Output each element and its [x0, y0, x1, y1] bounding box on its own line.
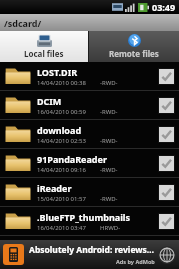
button[interactable]: Open ad in browser	[158, 246, 176, 264]
staticText: .BlueFTP_thumbnails	[37, 211, 131, 223]
button[interactable]: Select 91PandaReader	[159, 156, 174, 171]
button[interactable]: DCIM	[0, 91, 179, 120]
button[interactable]: Select DCIM	[159, 98, 174, 113]
staticText: iReader	[37, 182, 72, 194]
button[interactable]: Absolutely Android: reviews & guide	[0, 240, 179, 269]
button[interactable]: download	[0, 120, 179, 149]
staticText: 15/04/2010 01:57	[37, 195, 86, 203]
staticText: 91PandaReader	[37, 153, 107, 165]
staticText: -RWD-	[100, 166, 118, 174]
button[interactable]: Select iReader	[159, 185, 174, 200]
staticText: download	[37, 124, 82, 136]
button[interactable]: Select .BlueFTP_thumbnails	[159, 214, 174, 229]
button[interactable]: Select LOST.DIR	[159, 69, 174, 84]
staticText: DCIM	[37, 95, 62, 107]
button[interactable]: 91PandaReader	[0, 149, 179, 178]
staticText: Local files	[24, 48, 64, 59]
staticText: /sdcard/	[4, 17, 42, 29]
button[interactable]: Local files	[0, 31, 88, 62]
staticText: -RWD-	[100, 79, 118, 87]
staticText: 16/04/2010 03:47	[37, 224, 86, 232]
staticText: Remote files	[109, 48, 159, 59]
staticText: 14/04/2010 09:16	[37, 166, 86, 174]
button[interactable]: .BlueFTP_thumbnails	[0, 207, 179, 236]
staticText: 14/04/2010 00:38	[37, 79, 86, 87]
staticText: -RWD-	[100, 137, 118, 145]
staticText: 03:49	[152, 1, 176, 13]
staticText: -RWD-	[100, 195, 118, 203]
staticText: 14/04/2010 02:53	[37, 137, 86, 145]
staticText: Ads by AdMob	[116, 258, 155, 265]
staticText: -RWD-	[100, 108, 118, 116]
staticText: 16/04/2010 00:59	[37, 108, 86, 116]
button[interactable]: iReader	[0, 178, 179, 207]
staticText: Absolutely Android: reviews & guide	[29, 244, 155, 256]
button[interactable]: Select download	[159, 127, 174, 142]
button[interactable]: LOST.DIR	[0, 62, 179, 91]
staticText: HRWD-	[100, 224, 121, 232]
button[interactable]: Remote files	[89, 31, 179, 62]
staticText: LOST.DIR	[37, 66, 78, 78]
